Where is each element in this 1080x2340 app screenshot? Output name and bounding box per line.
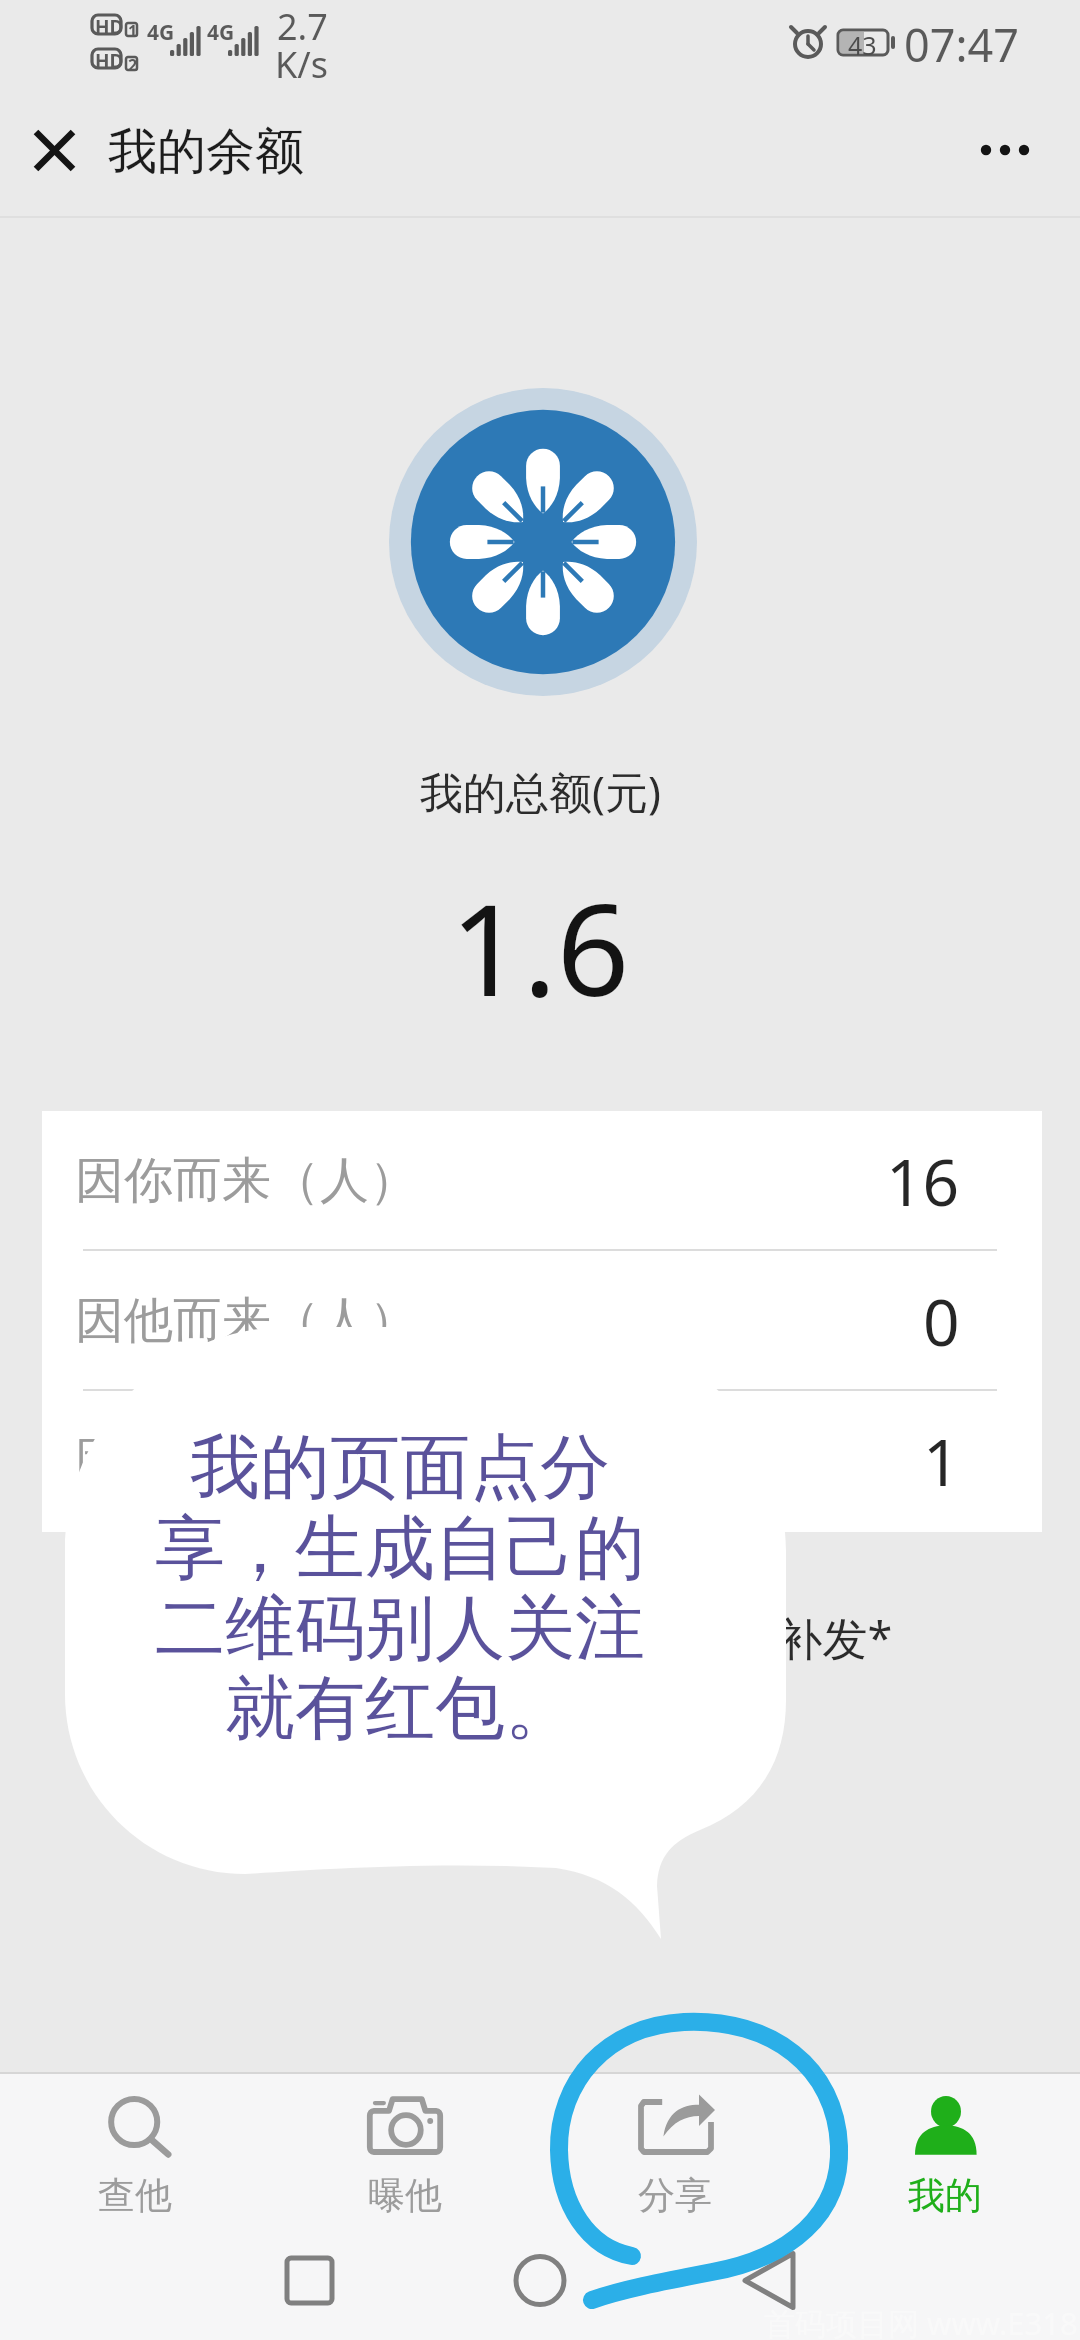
staticText: 07:47 <box>904 14 1020 75</box>
staticText: 我的 <box>908 2172 982 2219</box>
button[interactable]: 因他而来（人） <box>42 1251 1042 1391</box>
staticText: 16 <box>886 1138 960 1225</box>
button[interactable]: 曝他 <box>270 2074 540 2232</box>
staticText: 曝他 <box>368 2172 442 2219</box>
staticText: 1 <box>128 20 138 42</box>
staticText: 我的总额(元) <box>420 762 661 821</box>
staticText: 2.7 <box>277 2 328 51</box>
button[interactable]: 分享 <box>540 2074 810 2232</box>
staticText: 我的页面点分 享，生成自己的 二维码别人关注 就有红包。 <box>155 1424 645 1753</box>
staticText: 首码项目网 www.E318.com <box>764 2302 1080 2340</box>
staticText: 4G <box>207 18 235 47</box>
staticText: 查他 <box>98 2172 172 2219</box>
button[interactable]: 我的 <box>810 2074 1080 2232</box>
staticText: 2 <box>128 54 138 76</box>
staticText: 我的余额 <box>108 121 304 183</box>
staticText: HD <box>95 14 124 40</box>
button[interactable]: 查他 <box>0 2074 270 2232</box>
button[interactable]: Close <box>6 102 103 199</box>
staticText: K/s <box>275 40 328 89</box>
staticText: 因他而来（人） <box>75 1290 418 1352</box>
staticText: *红包余额满1元可提现，次日补发* <box>187 1607 893 1668</box>
button[interactable]: 因你而来（元） <box>42 1391 1042 1531</box>
staticText: 43 <box>848 28 877 62</box>
button[interactable]: 因你而来（人） <box>42 1111 1042 1251</box>
button[interactable]: More options <box>962 106 1050 194</box>
staticText: 因你而来（元） <box>75 1430 418 1492</box>
staticText: 分享 <box>638 2172 712 2219</box>
staticText: HD <box>95 48 124 74</box>
staticText: 因你而来（人） <box>75 1150 418 1212</box>
staticText: 0 <box>923 1278 960 1365</box>
staticText: 4G <box>147 18 175 47</box>
staticText: 1 <box>923 1418 960 1505</box>
staticText: 1.6 <box>450 860 630 1033</box>
